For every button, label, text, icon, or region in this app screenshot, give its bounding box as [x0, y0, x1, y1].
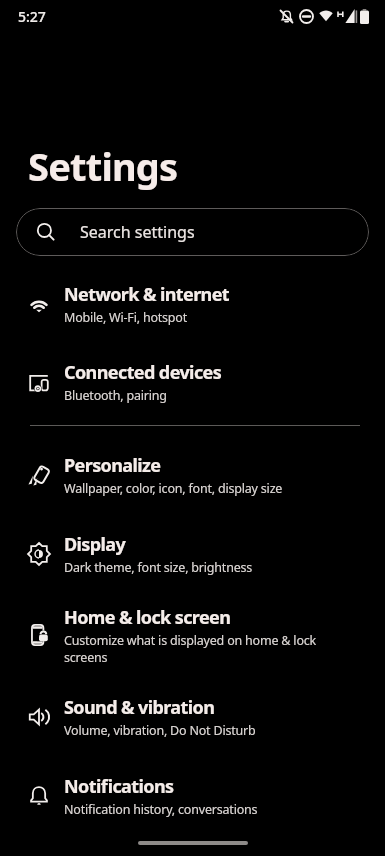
button[interactable]: Display [0, 513, 385, 592]
button[interactable]: Home & lock screen [0, 592, 385, 676]
staticText: Search settings [80, 221, 195, 243]
staticText: Bluetooth, pairing [64, 387, 167, 404]
staticText: Customize what is displayed on home & lo… [64, 632, 317, 665]
button[interactable]: Search settings [16, 208, 369, 256]
staticText: Settings [28, 140, 178, 192]
button[interactable]: Sound & vibration [0, 676, 385, 755]
staticText: Dark theme, font size, brightness [64, 559, 253, 576]
staticText: Wallpaper, color, icon, font, display si… [64, 480, 283, 497]
staticText: Notification history, conversations [64, 801, 258, 818]
staticText: Personalize [64, 453, 161, 478]
button[interactable]: Notifications [0, 755, 385, 834]
staticText: Sound & vibration [64, 695, 215, 720]
staticText: Notifications [64, 774, 174, 799]
staticText: Volume, vibration, Do Not Disturb [64, 722, 256, 739]
staticText: Home & lock screen [64, 605, 231, 630]
staticText: Connected devices [64, 360, 222, 385]
button[interactable]: Connected devices [0, 342, 385, 420]
button[interactable]: Personalize [0, 434, 385, 513]
staticText: 5:27 [18, 7, 46, 26]
staticText: Display [64, 532, 126, 557]
staticText: Network & internet [64, 282, 230, 307]
staticText: Mobile, Wi-Fi, hotspot [64, 309, 188, 326]
button[interactable]: Network & internet [0, 264, 385, 342]
